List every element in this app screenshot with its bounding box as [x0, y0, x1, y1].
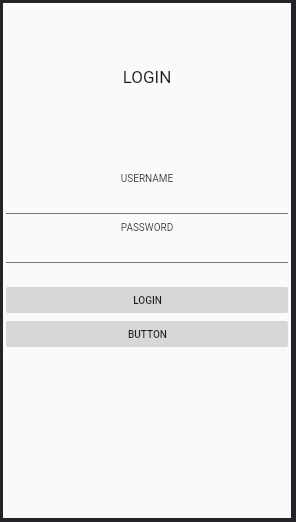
staticText: USERNAME — [3, 173, 291, 185]
button[interactable]: USERNAME — [3, 165, 291, 214]
button[interactable]: BUTTON — [6, 321, 288, 347]
staticText: LOGIN — [133, 295, 162, 307]
staticText: BUTTON — [128, 329, 167, 341]
staticText: PASSWORD — [3, 222, 291, 234]
staticText: LOGIN — [3, 67, 291, 87]
button[interactable]: LOGIN — [6, 287, 288, 313]
button[interactable]: PASSWORD — [3, 214, 291, 263]
